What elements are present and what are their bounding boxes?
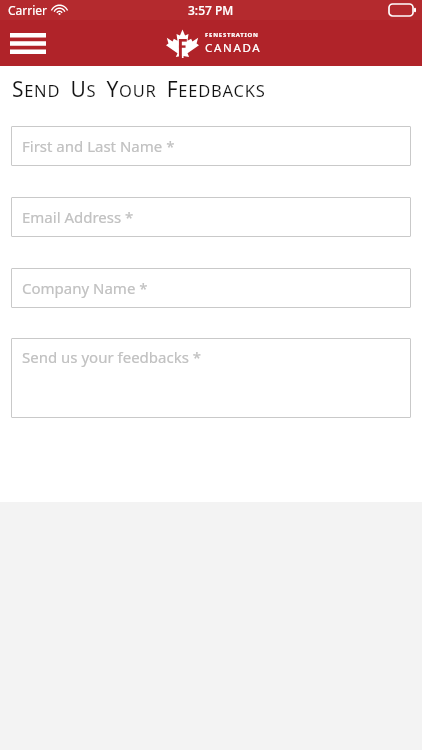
- button[interactable]: Open navigation menu: [4, 24, 52, 62]
- staticText: Send us your feedbacks *: [22, 347, 202, 367]
- staticText: Email Address *: [22, 207, 134, 227]
- staticText: First and Last Name *: [22, 136, 175, 156]
- staticText: SEND US YOUR FEEDBACKS: [12, 75, 266, 104]
- button[interactable]: Company Name *: [11, 268, 411, 308]
- button[interactable]: Email Address *: [11, 197, 411, 237]
- staticText: Company Name *: [22, 278, 148, 298]
- staticText: CANADA: [205, 40, 262, 56]
- button[interactable]: Send us your feedbacks *: [11, 338, 411, 418]
- staticText: Carrier: [8, 2, 48, 18]
- button[interactable]: Fenestration Canada home: [166, 29, 262, 58]
- staticText: FENESTRATION: [205, 31, 259, 39]
- staticText: 3:57 PM: [188, 2, 234, 18]
- button[interactable]: First and Last Name *: [11, 126, 411, 166]
